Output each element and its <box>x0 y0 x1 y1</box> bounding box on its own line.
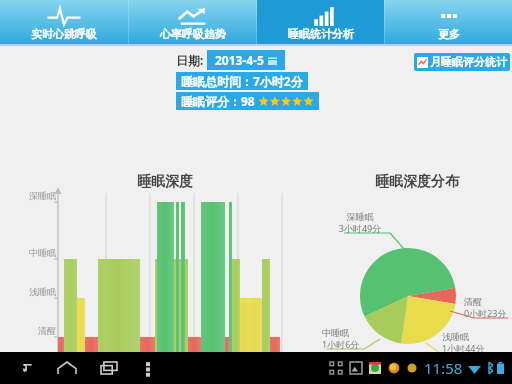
button[interactable]: 实时心跳呼吸 <box>0 0 128 46</box>
staticText: 睡眠统计分析 <box>288 27 354 41</box>
staticText: 中睡眠 <box>14 247 56 258</box>
staticText: 1小时44分 <box>442 342 498 354</box>
staticText: 清醒 <box>464 296 512 307</box>
staticText: 心率呼吸趋势 <box>160 27 226 41</box>
staticText: 睡眠深度 <box>137 173 193 191</box>
staticText: 1小时6分 <box>322 338 370 350</box>
staticText: 睡眠评分：98 <box>181 93 255 109</box>
button[interactable]: 月睡眠评分统计 <box>414 53 510 71</box>
staticText: 3小时49分 <box>328 222 392 234</box>
staticText: 23:00 <box>41 373 75 384</box>
staticText: 中睡眠 <box>322 327 370 338</box>
staticText: 深睡眠 <box>328 211 392 222</box>
staticText: 深睡眠 <box>14 190 56 201</box>
staticText: 日期: <box>176 52 204 68</box>
staticText: 更多 <box>438 27 460 41</box>
button[interactable]: Back <box>10 353 40 383</box>
staticText: 00:24 <box>89 373 123 384</box>
staticText: 睡眠深度分布 <box>375 173 459 191</box>
button[interactable]: Home <box>52 353 82 383</box>
staticText: 月睡眠评分统计 <box>430 55 507 69</box>
button[interactable]: 睡眠统计分析 <box>257 0 384 46</box>
button[interactable]: Recent apps <box>94 353 124 383</box>
staticText: 清醒 <box>14 325 56 336</box>
button[interactable]: More options <box>136 356 160 380</box>
staticText: 2013-4-5 <box>215 52 264 68</box>
staticText: 01:48 <box>133 373 167 384</box>
staticText: 0小时23分 <box>464 307 512 319</box>
staticText: 睡眠总时间：7小时2分 <box>181 73 303 89</box>
button[interactable]: 2013-4-5 <box>207 50 285 70</box>
staticText: 浅睡眠 <box>442 331 498 342</box>
staticText: 实时心跳呼吸 <box>31 27 97 41</box>
button[interactable]: 心率呼吸趋势 <box>129 0 256 46</box>
button[interactable]: 更多 <box>385 0 512 46</box>
staticText: 11:58 <box>424 358 463 378</box>
staticText: 浅睡眠 <box>14 286 56 297</box>
